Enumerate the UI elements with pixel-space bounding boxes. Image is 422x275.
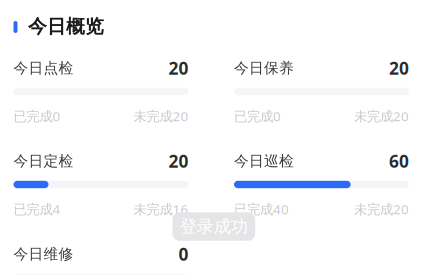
staticText: 已完成40 — [234, 200, 289, 218]
staticText: 20 — [168, 149, 188, 172]
staticText: 未完成16 — [133, 200, 188, 218]
staticText: 今日定检 — [13, 152, 73, 170]
staticText: 未完成20 — [133, 107, 188, 125]
button[interactable]: 今日保养 — [0, 0, 422, 275]
staticText: 今日点检 — [13, 59, 73, 77]
button[interactable]: 今日维修 — [0, 0, 422, 275]
button[interactable]: 今日巡检 — [0, 0, 422, 275]
staticText: 今日巡检 — [234, 152, 294, 170]
staticText: 已完成0 — [13, 107, 60, 125]
staticText: 今日维修 — [13, 245, 73, 263]
staticText: 已完成4 — [13, 200, 60, 218]
staticText: 60 — [389, 149, 409, 172]
staticText: 已完成0 — [234, 107, 281, 125]
staticText: 20 — [168, 56, 188, 79]
staticText: 今日保养 — [234, 59, 294, 77]
staticText: 0 — [178, 242, 188, 265]
staticText: 今日概览 — [28, 15, 104, 38]
button[interactable]: 今日点检 — [0, 0, 422, 275]
button[interactable]: 今日定检 — [0, 0, 422, 275]
staticText: 登录成功 — [180, 216, 248, 237]
staticText: 20 — [389, 56, 409, 79]
staticText: 未完成20 — [354, 200, 409, 218]
staticText: 未完成20 — [354, 107, 409, 125]
